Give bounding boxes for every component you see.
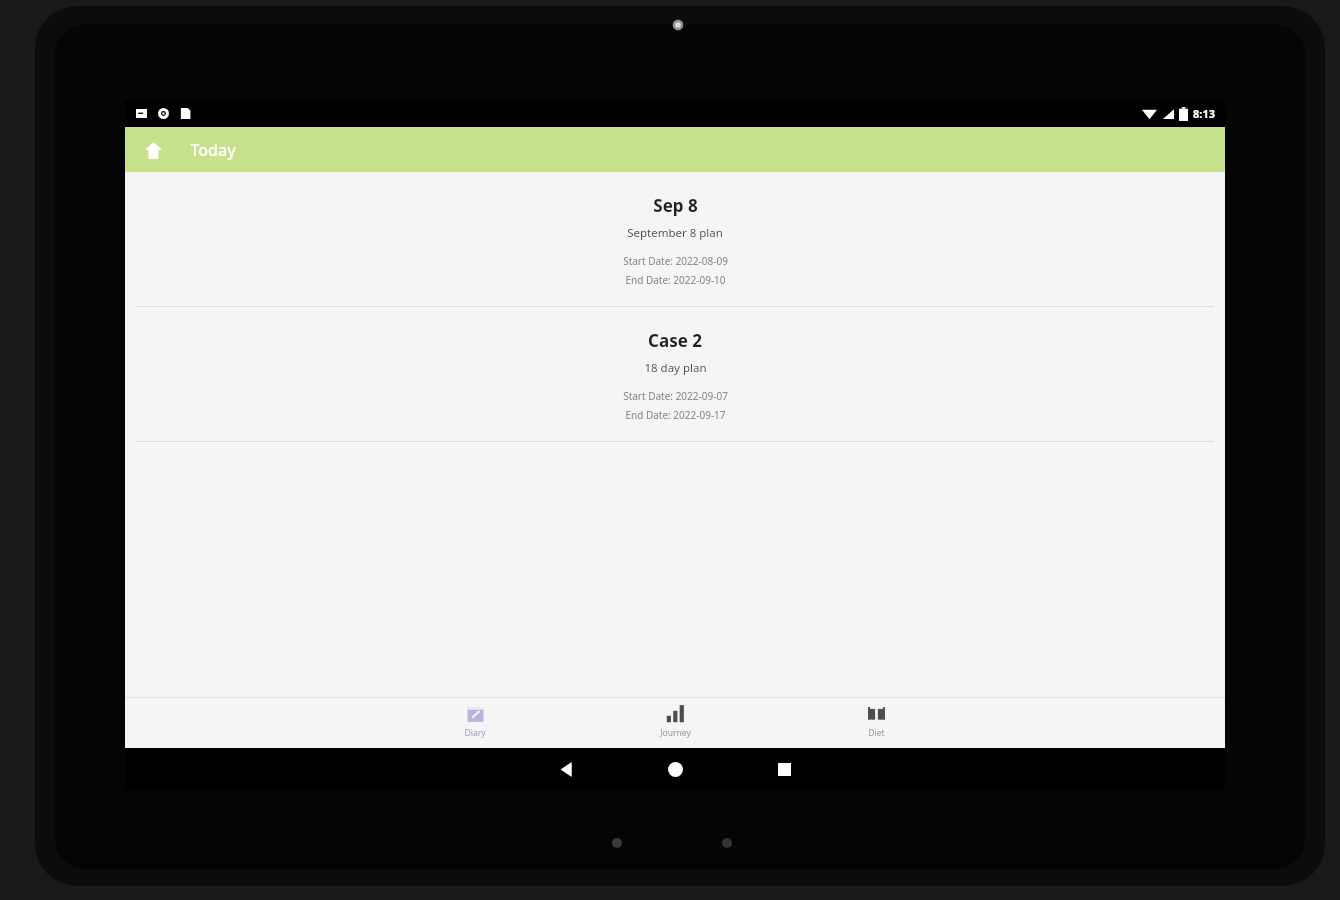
staticText: End Date: 2022-09-17 xyxy=(625,408,726,422)
button[interactable]: Back xyxy=(539,748,593,790)
staticText: Start Date: 2022-09-07 xyxy=(623,389,728,403)
staticText: Case 2 xyxy=(648,329,702,352)
button[interactable]: Sep 8 xyxy=(125,172,1225,307)
button[interactable]: Diary xyxy=(415,697,535,748)
staticText: September 8 plan xyxy=(627,225,723,241)
staticText: 8:13 xyxy=(1193,106,1215,121)
staticText: Today xyxy=(190,139,236,161)
button[interactable]: Recent apps xyxy=(757,748,811,790)
button[interactable]: Home xyxy=(135,132,171,168)
staticText: 18 day plan xyxy=(644,360,707,376)
staticText: Start Date: 2022-08-09 xyxy=(623,254,728,268)
button[interactable]: Journey xyxy=(615,697,735,748)
staticText: Diary xyxy=(464,727,486,739)
staticText: Journey xyxy=(660,727,691,739)
button[interactable]: Diet xyxy=(816,697,936,748)
button[interactable]: Home xyxy=(648,748,702,790)
staticText: Sep 8 xyxy=(653,194,698,217)
staticText: End Date: 2022-09-10 xyxy=(625,273,726,287)
button[interactable]: Case 2 xyxy=(125,307,1225,442)
staticText: Diet xyxy=(868,727,885,739)
